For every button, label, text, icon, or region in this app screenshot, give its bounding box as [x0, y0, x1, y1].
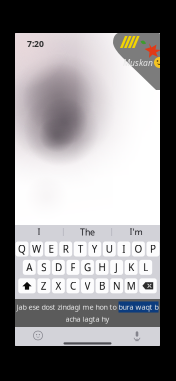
- staticText: V: [84, 279, 90, 292]
- button[interactable]: K: [125, 260, 138, 275]
- staticText: E: [49, 242, 54, 256]
- staticText: Z: [41, 279, 47, 292]
- button[interactable]: X: [52, 278, 65, 293]
- staticText: X: [55, 279, 61, 292]
- staticText: I: [122, 242, 125, 256]
- staticText: Q: [18, 242, 26, 256]
- button[interactable]: O: [132, 241, 145, 256]
- button[interactable]: Y: [88, 241, 101, 256]
- button[interactable]: R: [59, 241, 72, 256]
- staticText: C: [70, 279, 76, 292]
- button[interactable]: Delete: [139, 278, 157, 293]
- button[interactable]: I: [15, 225, 63, 239]
- button[interactable]: C: [66, 278, 79, 293]
- button[interactable]: V: [81, 278, 94, 293]
- staticText: A: [26, 261, 32, 274]
- staticText: 7:20: [27, 38, 44, 50]
- staticText: P: [150, 242, 156, 256]
- button[interactable]: N: [110, 278, 123, 293]
- button[interactable]: S: [37, 260, 50, 275]
- staticText: I'm: [129, 226, 142, 238]
- button[interactable]: Shift: [18, 278, 36, 293]
- button[interactable]: I'm: [112, 225, 160, 239]
- button[interactable]: E: [45, 241, 58, 256]
- staticText: F: [70, 261, 75, 274]
- staticText: The: [80, 226, 95, 238]
- staticText: acha lagta hy: [65, 314, 109, 324]
- staticText: W: [32, 242, 41, 256]
- staticText: H: [98, 261, 105, 274]
- button[interactable]: U: [103, 241, 116, 256]
- button[interactable]: P: [146, 241, 159, 256]
- button[interactable]: The: [63, 225, 111, 239]
- button[interactable]: D: [52, 260, 65, 275]
- staticText: S: [41, 261, 46, 274]
- button[interactable]: W: [30, 241, 43, 256]
- button[interactable]: A: [23, 260, 36, 275]
- staticText: L: [143, 261, 148, 274]
- button[interactable]: F: [66, 260, 79, 275]
- staticText: J: [115, 261, 118, 274]
- staticText: T: [78, 242, 83, 256]
- staticText: G: [84, 261, 91, 274]
- button[interactable]: I: [117, 241, 130, 256]
- button[interactable]: Dictate: [126, 328, 148, 341]
- staticText: N: [113, 279, 120, 292]
- staticText: bura waqt b: [118, 302, 158, 312]
- button[interactable]: T: [74, 241, 87, 256]
- staticText: R: [63, 242, 69, 256]
- button[interactable]: H: [96, 260, 108, 275]
- button[interactable]: Z: [37, 278, 50, 293]
- button[interactable]: Q: [16, 241, 28, 256]
- button[interactable]: B: [96, 278, 108, 293]
- button[interactable]: G: [81, 260, 94, 275]
- staticText: Jab ese dost zindagi me hon to: [16, 302, 118, 312]
- button[interactable]: L: [139, 260, 152, 275]
- staticText: O: [134, 242, 142, 256]
- staticText: Y: [92, 242, 98, 256]
- staticText: Muskan: [123, 57, 153, 69]
- staticText: D: [55, 261, 62, 274]
- staticText: U: [106, 242, 113, 256]
- button[interactable]: M: [125, 278, 138, 293]
- button[interactable]: J: [110, 260, 123, 275]
- button[interactable]: Emoji keyboard: [27, 329, 49, 342]
- staticText: M: [127, 279, 136, 292]
- staticText: B: [99, 279, 105, 292]
- staticText: K: [128, 261, 134, 274]
- staticText: I: [37, 226, 40, 238]
